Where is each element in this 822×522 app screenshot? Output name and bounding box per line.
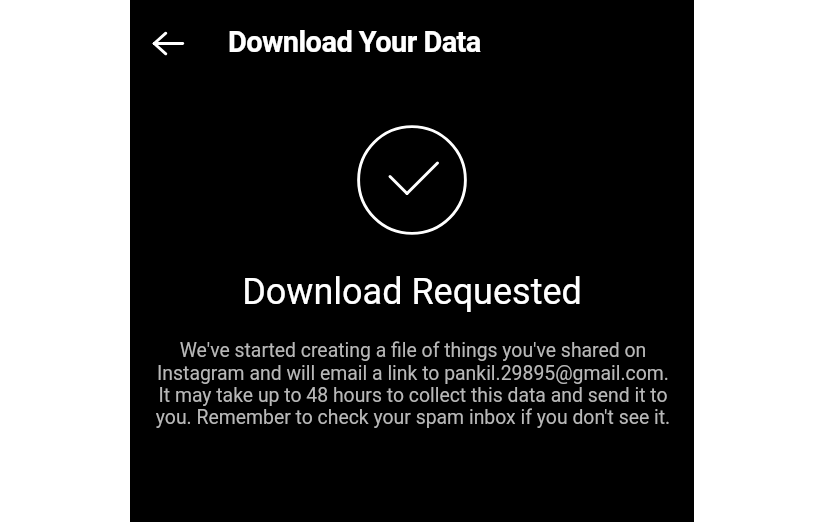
button[interactable]: Back: [143, 19, 191, 67]
staticText: We've started creating a file of things …: [131, 339, 695, 428]
staticText: Download Requested: [130, 271, 694, 313]
staticText: Download Your Data: [228, 25, 481, 59]
